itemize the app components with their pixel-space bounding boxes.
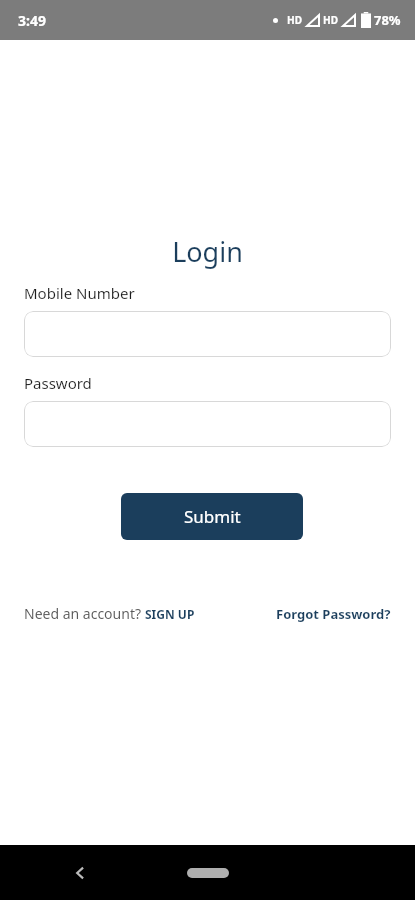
button[interactable]: Text input field: [24, 401, 391, 447]
staticText: 3:49: [18, 11, 46, 30]
staticText: Submit: [184, 505, 241, 528]
button[interactable]: Text input field: [24, 311, 391, 357]
staticText: 78%: [374, 11, 401, 29]
staticText: Forgot Password?: [276, 605, 391, 623]
staticText: HD: [323, 13, 338, 27]
button[interactable]: Need an account?: [24, 604, 195, 623]
button[interactable]: Back: [62, 855, 98, 891]
staticText: Mobile Number: [24, 283, 135, 303]
staticText: Password: [24, 373, 92, 393]
staticText: HD: [287, 13, 302, 27]
staticText: Need an account?: [24, 604, 145, 623]
button[interactable]: Forgot Password?: [276, 605, 391, 623]
button[interactable]: Home: [178, 858, 238, 888]
button[interactable]: Submit: [121, 493, 303, 540]
staticText: SIGN UP: [145, 606, 195, 622]
staticText: Login: [0, 233, 415, 270]
